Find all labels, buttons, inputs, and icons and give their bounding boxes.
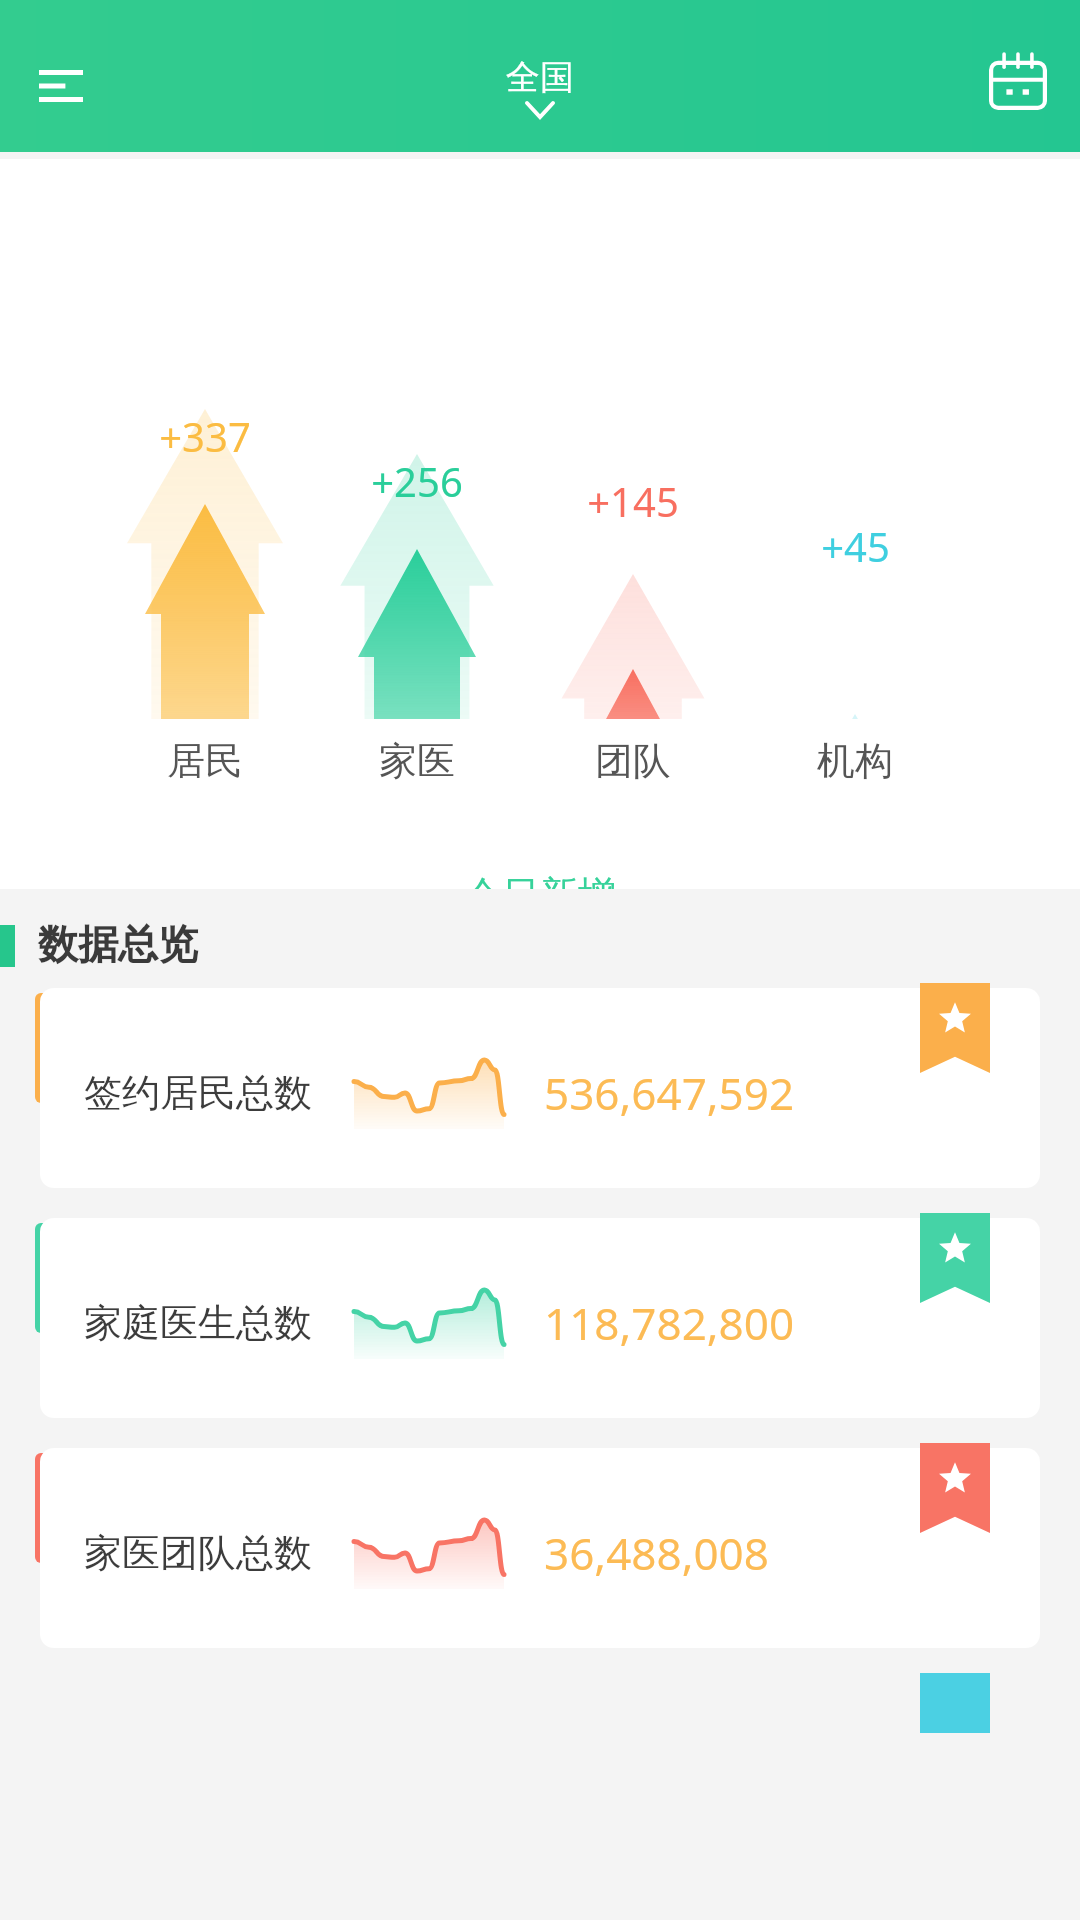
staticText: 536,647,592 — [544, 1063, 795, 1123]
staticText: 今日新增 — [464, 871, 616, 919]
button[interactable]: Calendar — [980, 44, 1056, 120]
staticText: +256 — [371, 454, 463, 508]
staticText: +337 — [159, 409, 251, 463]
button[interactable]: 全国 — [506, 56, 574, 117]
staticText: +145 — [587, 474, 679, 528]
staticText: 家医 — [379, 737, 455, 785]
staticText: 家医团队总数 — [84, 1529, 312, 1577]
button[interactable]: 家庭医生总数 — [40, 1213, 1040, 1423]
staticText: 数据总览 — [38, 919, 198, 969]
button[interactable]: 签约居民总数 — [40, 983, 1040, 1193]
staticText: 机构 — [817, 737, 893, 785]
staticText: 家庭医生总数 — [84, 1299, 312, 1347]
staticText: 全国 — [506, 56, 574, 99]
staticText: 团队 — [595, 737, 671, 785]
staticText: 居民 — [167, 737, 243, 785]
button[interactable]: 今日新增 — [380, 871, 700, 974]
button[interactable]: 家医团队总数 — [40, 1443, 1040, 1653]
staticText: +45 — [821, 519, 890, 573]
button[interactable]: Menu — [22, 47, 100, 125]
staticText: 36,488,008 — [544, 1523, 769, 1583]
staticText: 签约居民总数 — [84, 1069, 312, 1117]
staticText: 118,782,800 — [544, 1293, 795, 1353]
